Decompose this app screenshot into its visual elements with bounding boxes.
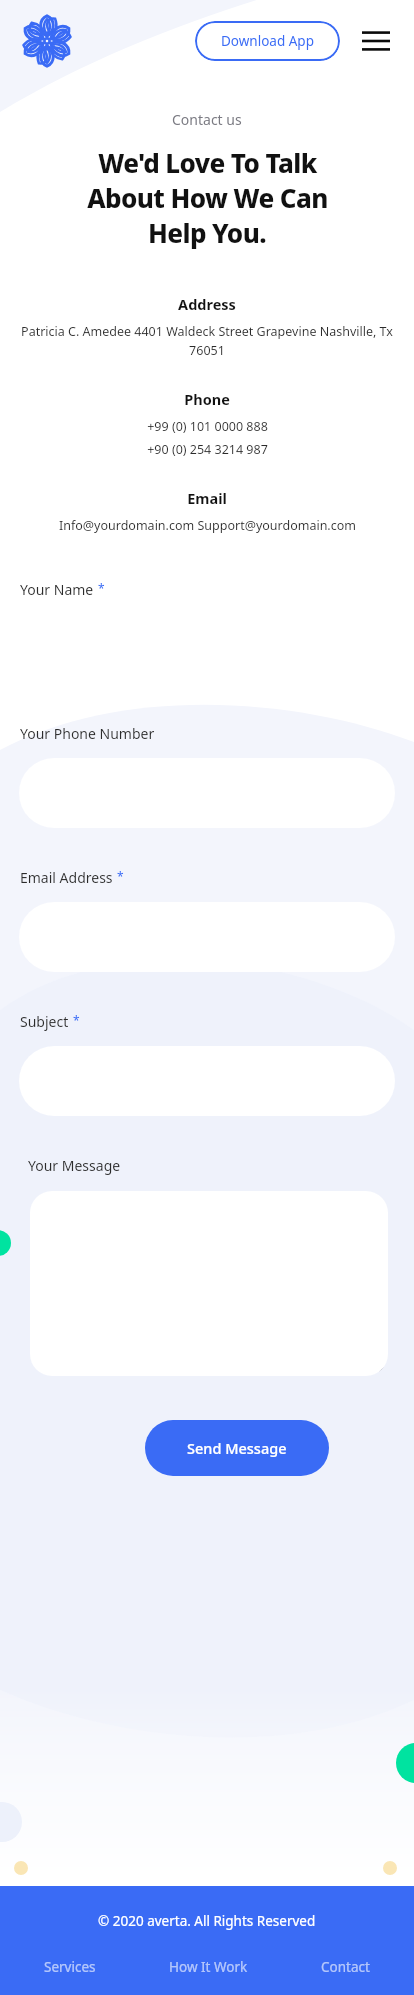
staticText: Patricia C. Amedee 4401 Waldeck Street G…: [10, 323, 404, 359]
staticText: Contact us: [172, 110, 242, 129]
button[interactable]: averta home: [18, 12, 76, 70]
button[interactable]: Download App: [195, 21, 340, 61]
staticText: Phone: [184, 389, 230, 409]
staticText: Contact: [321, 1958, 370, 1976]
button[interactable]: Menu: [356, 21, 396, 61]
button[interactable]: [19, 1046, 395, 1116]
button[interactable]: How It Work: [165, 1956, 252, 1978]
staticText: © 2020 averta. All Rights Reserved: [98, 1912, 316, 1930]
staticText: Send Message: [187, 1438, 287, 1458]
staticText: +99 (0) 101 0000 888: [147, 418, 268, 435]
staticText: About How We Can: [87, 180, 328, 215]
staticText: Your Name: [20, 580, 94, 599]
staticText: Info@yourdomain.com Support@yourdomain.c…: [59, 517, 356, 534]
staticText: +90 (0) 254 3214 987: [147, 441, 268, 458]
staticText: Subject: [20, 1012, 69, 1031]
staticText: Your Phone Number: [20, 724, 155, 743]
staticText: Email: [187, 488, 227, 508]
button[interactable]: Send Message: [145, 1420, 329, 1476]
staticText: Address: [178, 294, 236, 314]
button[interactable]: Services: [40, 1956, 100, 1978]
staticText: Your Message: [28, 1156, 121, 1175]
staticText: We'd Love To Talk: [98, 145, 317, 180]
staticText: *: [117, 868, 124, 884]
staticText: Services: [44, 1958, 96, 1976]
button[interactable]: Contact: [317, 1956, 374, 1978]
staticText: Download App: [221, 32, 314, 50]
staticText: *: [73, 1012, 80, 1028]
staticText: Help You.: [148, 215, 266, 250]
staticText: How It Work: [169, 1958, 248, 1976]
staticText: *: [98, 580, 105, 596]
staticText: Email Address: [20, 868, 113, 887]
